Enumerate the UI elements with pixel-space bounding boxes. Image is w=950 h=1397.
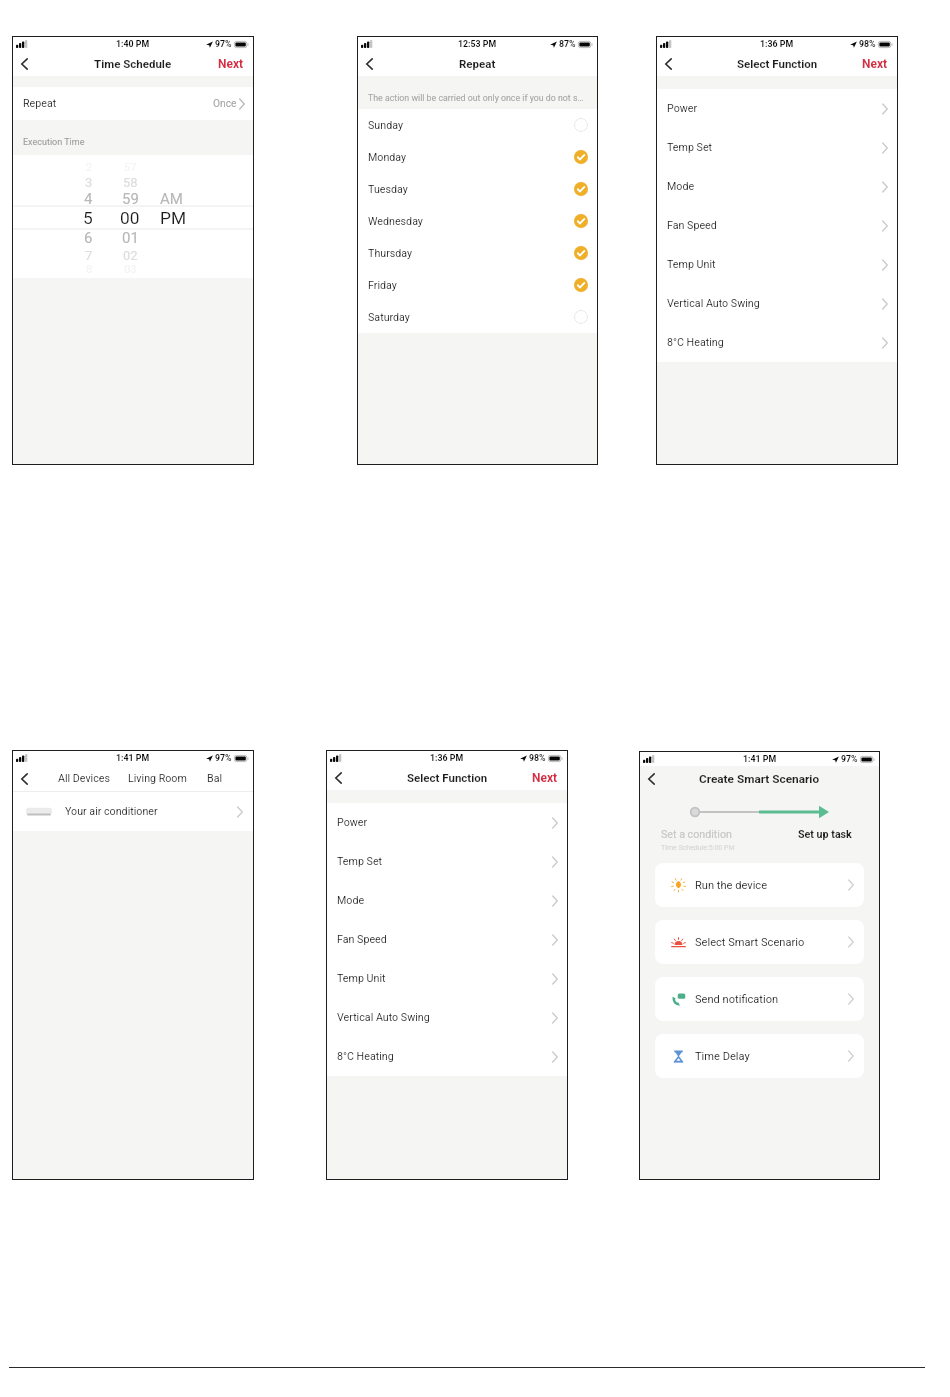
staticText: Fan Speed [667,219,717,232]
staticText: 6 [84,229,93,247]
staticText: Mode [667,180,695,193]
button[interactable]: Temp Unit [327,959,567,998]
button[interactable]: Back [641,768,661,790]
button[interactable]: Vertical Auto Swing [657,284,897,323]
button[interactable]: Send notification [655,977,864,1021]
staticText: Monday [368,151,407,164]
staticText: Wednesday [368,215,423,228]
button[interactable]: Select Smart Scenario [655,920,864,964]
staticText: All Devices [58,772,110,785]
button[interactable]: Time Delay [655,1034,864,1078]
staticText: 01 [122,229,139,247]
staticText: 98% [529,753,546,763]
button[interactable]: Fan Speed [657,206,897,245]
staticText: 03 [124,263,137,276]
staticText: Friday [368,279,397,292]
staticText: 57 [124,161,137,174]
button[interactable]: Next [853,53,897,75]
button[interactable]: Temp Set [327,842,567,881]
button[interactable]: Temp Set [657,128,897,167]
button[interactable]: Bal [206,766,224,791]
button[interactable]: Power [657,89,897,128]
staticText: Bal [207,772,223,785]
button[interactable]: Living Room [122,766,193,791]
staticText: Once [213,98,237,110]
staticText: 97% [841,754,858,764]
staticText: Set up task [798,828,852,841]
staticText: Vertical Auto Swing [667,297,760,310]
staticText: Sunday [368,119,403,132]
staticText: Set a condition [661,828,732,841]
button[interactable]: Back [14,768,34,790]
staticText: PM [160,208,187,228]
button[interactable]: Wednesday [358,205,597,237]
button[interactable]: Vertical Auto Swing [327,998,567,1037]
staticText: Your air conditioner [65,805,158,818]
button[interactable]: Sunday [358,109,597,141]
staticText: 4 [84,190,93,208]
staticText: Fan Speed [337,933,387,946]
button[interactable]: Power [327,803,567,842]
staticText: 00 [120,208,140,228]
staticText: Select Function [737,57,818,70]
staticText: 87% [559,39,576,49]
staticText: Next [862,57,888,71]
staticText: Time Schedule:5:00 PM [661,844,735,852]
staticText: Power [337,816,368,829]
button[interactable]: Run the device [655,863,864,907]
button[interactable]: Saturday [358,301,597,333]
button[interactable]: Back [359,53,379,75]
button[interactable]: Tuesday [358,173,597,205]
button[interactable]: Mode [327,881,567,920]
staticText: 97% [215,39,232,49]
staticText: Repeat [23,97,57,110]
staticText: Execution Time [23,137,85,148]
staticText: Select Function [407,771,488,784]
staticText: 1:41 PM [116,753,150,763]
staticText: 1:40 PM [116,39,150,49]
staticText: Run the device [695,879,768,892]
staticText: Saturday [368,311,410,324]
button[interactable]: Friday [358,269,597,301]
staticText: 12:53 PM [458,39,497,49]
button[interactable]: Monday [358,141,597,173]
button[interactable]: Next [209,53,253,75]
button[interactable]: Thursday [358,237,597,269]
button[interactable]: All Devices [52,766,116,791]
staticText: 02 [123,248,138,263]
staticText: 59 [122,190,139,208]
staticText: Temp Unit [667,258,716,271]
staticText: 1:36 PM [430,753,464,763]
staticText: AM [160,190,183,208]
staticText: Next [218,57,244,71]
staticText: Power [667,102,698,115]
staticText: 1:36 PM [760,39,794,49]
button[interactable]: 8°C Heating [327,1037,567,1076]
staticText: Tuesday [368,183,408,196]
button[interactable]: Back [328,767,348,789]
staticText: 8 [86,263,93,276]
staticText: Time Delay [695,1050,750,1063]
staticText: Select Smart Scenario [695,936,805,949]
button[interactable]: 8°C Heating [657,323,897,362]
button[interactable]: Back [658,53,678,75]
button[interactable]: Your air conditioner [13,792,253,831]
staticText: Vertical Auto Swing [337,1011,430,1024]
staticText: The action will be carried out only once… [368,93,584,103]
button[interactable]: Next [523,767,567,789]
button[interactable]: Back [14,53,34,75]
staticText: Living Room [128,772,187,785]
staticText: 97% [215,753,232,763]
staticText: Temp Set [667,141,713,154]
staticText: Send notification [695,993,779,1006]
staticText: Create Smart Scenario [699,772,820,786]
button[interactable]: Repeat [13,87,253,120]
staticText: 5 [83,208,93,228]
button[interactable]: Temp Unit [657,245,897,284]
button[interactable]: Fan Speed [327,920,567,959]
staticText: 2 [86,161,93,174]
staticText: 3 [85,175,93,190]
staticText: 58 [123,175,138,190]
button[interactable]: Mode [657,167,897,206]
staticText: 1:41 PM [743,754,777,764]
